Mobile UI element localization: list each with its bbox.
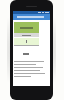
button[interactable] <box>14 22 39 33</box>
button[interactable]: Operating System Program <box>13 14 50 20</box>
button[interactable] <box>14 33 39 37</box>
button[interactable] <box>14 38 39 45</box>
